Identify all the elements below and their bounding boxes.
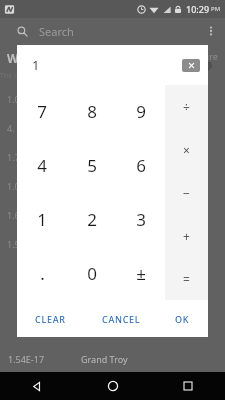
staticText: 4 [37, 154, 47, 177]
staticText: 5 [87, 154, 97, 177]
staticText: 9 [136, 100, 146, 123]
staticText: 3 [136, 208, 146, 231]
button[interactable]: 9 [116, 85, 165, 138]
button[interactable]: 3 [116, 192, 165, 246]
button[interactable]: Back [0, 372, 75, 400]
staticText: 4. [7, 122, 15, 134]
staticText: 1 [37, 208, 47, 231]
staticText: Grand Troy [81, 353, 128, 365]
button[interactable]: More options [200, 20, 222, 42]
button[interactable]: 7 [17, 85, 67, 138]
button[interactable]: . [17, 246, 67, 300]
staticText: 7 [37, 100, 47, 123]
staticText: ÷ [183, 99, 190, 115]
staticText: . [40, 262, 45, 285]
staticText: OK [175, 313, 190, 325]
button[interactable]: CANCEL [98, 308, 145, 330]
button[interactable]: 5 [67, 138, 116, 192]
staticText: PM [211, 5, 221, 13]
staticText: 1.0 [7, 93, 20, 105]
staticText: CANCEL [102, 313, 141, 325]
staticText: 1.5 [7, 238, 20, 250]
staticText: ? [200, 52, 213, 87]
button[interactable]: Recent apps [150, 372, 225, 400]
button[interactable]: 8 [67, 85, 116, 138]
button[interactable]: 1 [17, 192, 67, 246]
staticText: Measure [181, 50, 218, 62]
staticText: 10:29 [186, 3, 210, 15]
button[interactable]: Delete [182, 59, 200, 72]
button[interactable]: 6 [116, 138, 165, 192]
staticText: 1.7 [7, 151, 20, 163]
button[interactable]: CLEAR [31, 308, 70, 330]
staticText: 2 [87, 208, 97, 231]
staticText: CLEAR [35, 313, 66, 325]
staticText: 0 [87, 262, 97, 285]
button[interactable]: = [165, 257, 208, 300]
button[interactable]: 4 [17, 138, 67, 192]
staticText: 1 [32, 56, 40, 74]
staticText: Search [39, 24, 74, 39]
button[interactable]: − [165, 171, 208, 214]
staticText: The unit [0, 71, 27, 81]
staticText: 1.54E-17 [8, 353, 45, 365]
staticText: W [7, 50, 19, 66]
button[interactable]: × [165, 128, 208, 171]
staticText: + [183, 228, 190, 244]
staticText: − [183, 185, 190, 201]
button[interactable]: ÷ [165, 85, 208, 128]
button[interactable]: ± [116, 246, 165, 300]
staticText: × [183, 142, 190, 158]
button[interactable]: 0 [67, 246, 116, 300]
staticText: ± [136, 262, 146, 285]
staticText: 8 [87, 100, 97, 123]
button[interactable]: 2 [67, 192, 116, 246]
other: Search [17, 26, 28, 37]
button[interactable]: OK [171, 308, 194, 330]
staticText: 1.0 [7, 180, 20, 192]
staticText: 1.6 [7, 209, 20, 221]
button[interactable]: + [165, 214, 208, 257]
button[interactable]: Search [0, 18, 225, 44]
staticText: 6 [136, 154, 146, 177]
staticText: = [183, 271, 190, 287]
button[interactable]: Home [75, 372, 150, 400]
